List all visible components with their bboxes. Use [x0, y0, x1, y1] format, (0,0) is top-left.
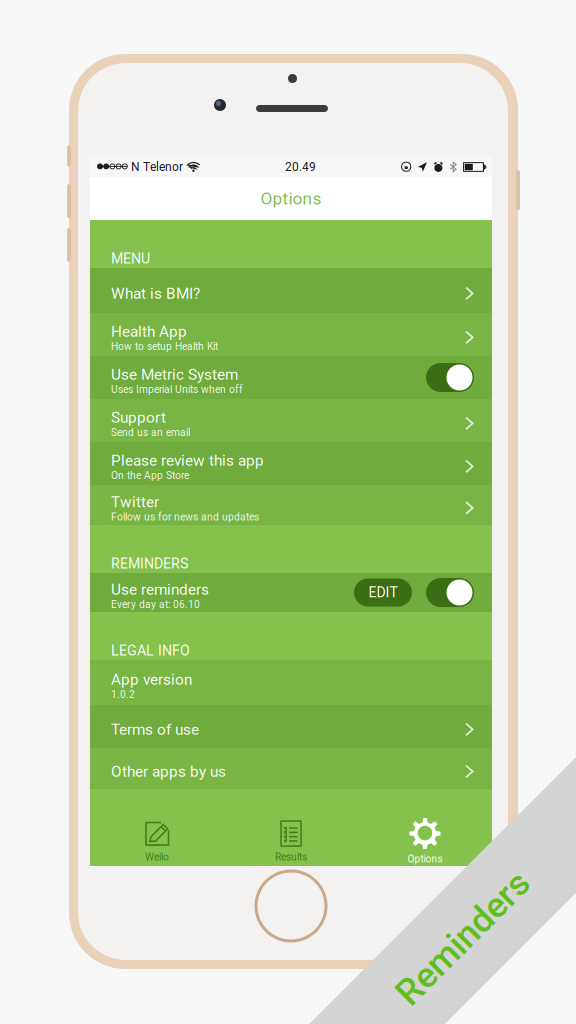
- staticText: EDIT: [368, 584, 397, 601]
- staticText: How to setup Health Kit: [111, 340, 218, 352]
- button[interactable]: Weilo: [90, 789, 224, 866]
- staticText: Support: [111, 408, 166, 426]
- button[interactable]: Twitter: [90, 485, 492, 525]
- staticText: App version: [111, 670, 192, 688]
- staticText: Options: [407, 853, 442, 865]
- staticText: Reminders: [372, 907, 545, 949]
- staticText: N Telenor: [128, 160, 183, 174]
- button[interactable]: Other apps by us: [90, 748, 492, 789]
- staticText: Twitter: [111, 493, 159, 511]
- staticText: Use reminders: [111, 580, 209, 598]
- staticText: Please review this app: [111, 451, 264, 469]
- staticText: Use Metric System: [111, 365, 238, 383]
- button[interactable]: Health App: [90, 313, 492, 356]
- staticText: Other apps by us: [111, 762, 226, 780]
- button[interactable]: EDIT: [354, 578, 412, 606]
- staticText: Follow us for news and updates: [111, 511, 259, 523]
- button[interactable]: Please review this app: [90, 442, 492, 485]
- button[interactable]: What is BMI?: [90, 268, 492, 313]
- staticText: Options: [260, 188, 321, 209]
- staticText: 20.49: [285, 160, 316, 174]
- staticText: On the App Store: [111, 469, 189, 481]
- staticText: Send us an email: [111, 426, 190, 438]
- staticText: What is BMI?: [111, 284, 200, 302]
- staticText: Results: [275, 851, 307, 863]
- button[interactable]: Options: [358, 789, 492, 866]
- button[interactable]: Use reminders: [90, 573, 492, 612]
- staticText: Health App: [111, 322, 187, 340]
- staticText: MENU: [111, 250, 150, 267]
- staticText: Every day at: 06.10: [111, 598, 200, 610]
- button[interactable]: Use Metric System: [90, 356, 492, 399]
- staticText: Uses Imperial Units when off: [111, 383, 243, 395]
- staticText: 1.0.2: [111, 688, 135, 700]
- staticText: Weilo: [145, 851, 169, 863]
- staticText: Terms of use: [111, 720, 199, 738]
- button[interactable]: Support: [90, 399, 492, 442]
- button[interactable]: Terms of use: [90, 705, 492, 748]
- button[interactable]: Results: [224, 789, 358, 866]
- staticText: REMINDERS: [111, 555, 188, 572]
- staticText: LEGAL INFO: [111, 642, 190, 659]
- button[interactable]: App version: [90, 660, 492, 705]
